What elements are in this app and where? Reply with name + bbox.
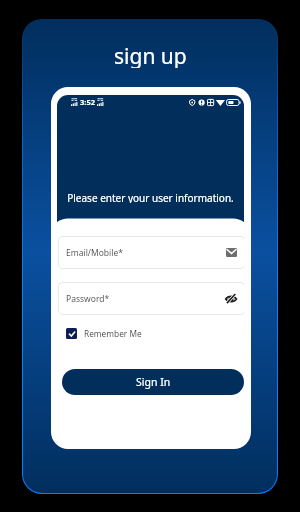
staticText: Please enter your user information. — [67, 191, 234, 203]
button[interactable]: Sign In — [62, 369, 244, 395]
staticText: Password* — [66, 293, 110, 305]
button[interactable]: Remember Me — [65, 324, 143, 342]
other: Email — [226, 248, 237, 257]
staticText: Remember Me — [84, 328, 142, 339]
staticText: Email/Mobile* — [66, 247, 123, 259]
staticText: sign up — [114, 42, 187, 68]
staticText: 3:52 — [80, 97, 95, 107]
other: Password — [225, 293, 237, 304]
button[interactable]: Password* — [58, 282, 244, 315]
staticText: Sign In — [136, 375, 171, 389]
button[interactable]: Email/Mobile* — [58, 236, 244, 269]
